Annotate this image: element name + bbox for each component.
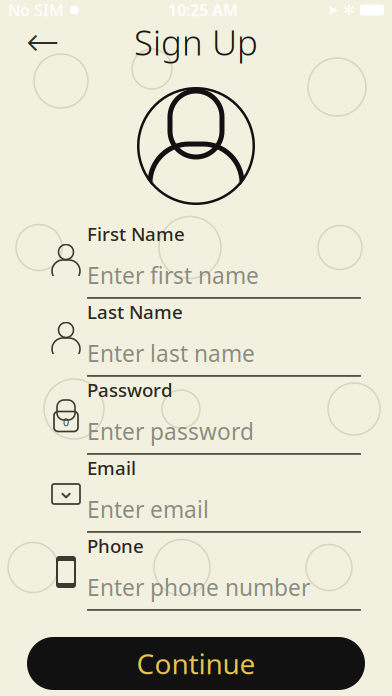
staticText: Continue: [136, 645, 255, 682]
staticText: Enter phone number: [87, 572, 310, 602]
button[interactable]: Last Name: [45, 299, 361, 377]
staticText: Sign Up: [134, 19, 258, 65]
button[interactable]: First Name: [45, 221, 361, 299]
button[interactable]: Phone: [45, 533, 361, 611]
staticText: Enter email: [87, 494, 209, 524]
staticText: Password: [87, 377, 173, 402]
staticText: ➤: [327, 2, 338, 17]
staticText: Email: [87, 455, 136, 480]
staticText: ⌄: [56, 478, 75, 503]
staticText: ✻: [343, 2, 354, 17]
staticText: ←: [26, 19, 60, 65]
staticText: Last Name: [87, 299, 183, 324]
staticText: 0: [63, 415, 69, 429]
staticText: No SIM: [8, 0, 64, 21]
staticText: 10:25 AM: [168, 0, 238, 21]
staticText: Enter first name: [87, 260, 259, 290]
button[interactable]: 0: [45, 377, 361, 455]
button[interactable]: ⌄: [45, 455, 361, 533]
button[interactable]: Back: [14, 20, 72, 64]
button[interactable]: Continue: [27, 637, 365, 690]
staticText: Phone: [87, 533, 144, 558]
staticText: Enter last name: [87, 338, 255, 368]
staticText: Enter password: [87, 416, 254, 446]
staticText: First Name: [87, 221, 185, 246]
